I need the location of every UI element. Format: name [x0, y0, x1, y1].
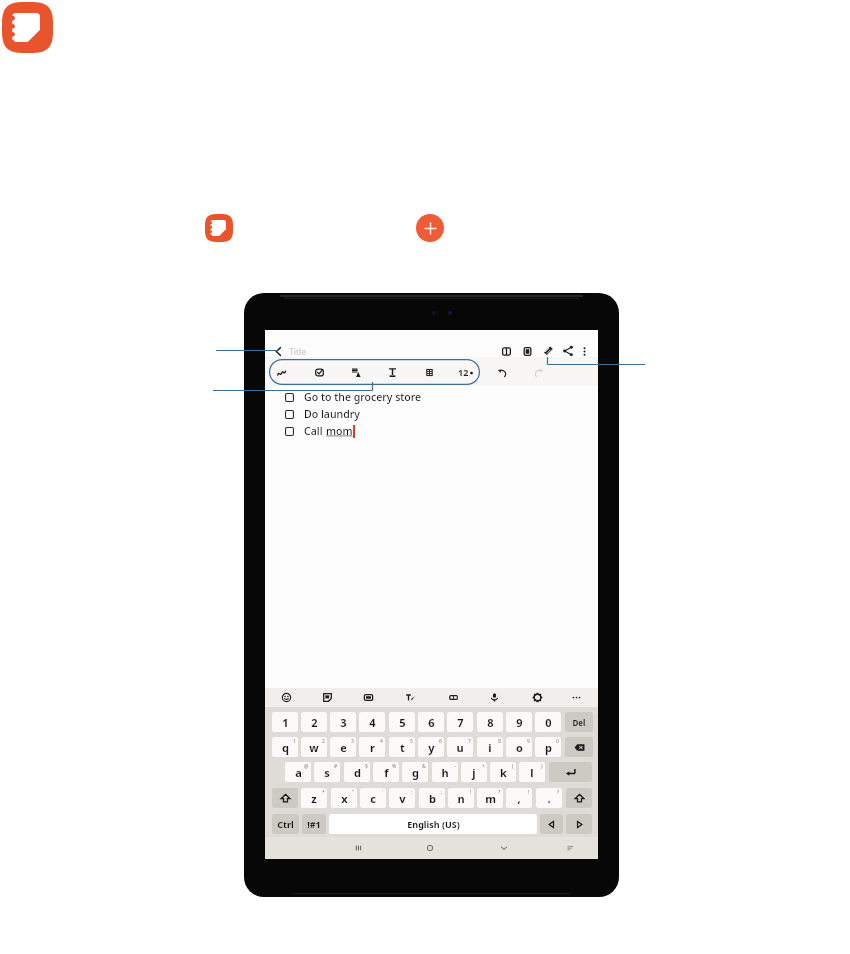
- button[interactable]: Checklist: [310, 363, 328, 381]
- button[interactable]: Emoji: [278, 689, 294, 705]
- button[interactable]: Shift: [566, 788, 592, 808]
- button[interactable]: Ctrl: [272, 814, 299, 834]
- staticText: 8: [487, 715, 494, 730]
- button[interactable]: Redo: [529, 363, 547, 381]
- button[interactable]: q: [272, 737, 298, 757]
- button[interactable]: Move cursor left: [540, 814, 563, 834]
- button[interactable]: GIF: [360, 689, 376, 705]
- staticText: j: [472, 765, 476, 780]
- staticText: p: [545, 740, 552, 755]
- button[interactable]: Home: [421, 839, 439, 857]
- button[interactable]: 4: [359, 712, 385, 732]
- button[interactable]: Clipboard: [445, 689, 461, 705]
- button[interactable]: More options: [576, 343, 592, 359]
- staticText: s: [324, 765, 330, 780]
- button[interactable]: More options: [568, 689, 584, 705]
- button[interactable]: j: [461, 762, 487, 782]
- staticText: &: [422, 763, 426, 770]
- button[interactable]: y: [418, 737, 444, 757]
- staticText: +: [482, 763, 485, 770]
- button[interactable]: e: [330, 737, 356, 757]
- button[interactable]: 2: [301, 712, 327, 732]
- button[interactable]: Go to the grocery store: [285, 389, 422, 405]
- staticText: English (US): [407, 818, 460, 830]
- button[interactable]: s: [314, 762, 340, 782]
- button[interactable]: Back: [270, 343, 287, 360]
- button[interactable]: Pen: [540, 343, 556, 359]
- button[interactable]: m: [477, 788, 503, 808]
- button[interactable]: 7: [447, 712, 473, 732]
- button[interactable]: Add note: [416, 214, 444, 242]
- button[interactable]: Handwriting: [272, 363, 290, 381]
- button[interactable]: ,: [506, 788, 532, 808]
- staticText: 6: [439, 738, 442, 745]
- button[interactable]: f: [373, 762, 399, 782]
- staticText: 6: [428, 715, 435, 730]
- staticText: y: [428, 740, 435, 755]
- button[interactable]: n: [448, 788, 474, 808]
- staticText: i: [488, 740, 492, 755]
- button[interactable]: 8: [477, 712, 503, 732]
- button[interactable]: Text extraction: [402, 689, 418, 705]
- button[interactable]: Enter: [549, 762, 592, 782]
- button[interactable]: 5: [389, 712, 415, 732]
- button[interactable]: Voice input: [486, 689, 502, 705]
- button[interactable]: Keyboard layout: [561, 839, 579, 857]
- button[interactable]: p: [535, 737, 561, 757]
- button[interactable]: Font size 12: [454, 363, 476, 380]
- button[interactable]: Recent apps: [349, 839, 367, 857]
- staticText: g: [412, 765, 419, 780]
- button[interactable]: u: [447, 737, 473, 757]
- button[interactable]: Undo: [493, 363, 511, 381]
- button[interactable]: Text format: [383, 363, 401, 381]
- button[interactable]: g: [402, 762, 428, 782]
- button[interactable]: Move cursor right: [566, 814, 592, 834]
- button[interactable]: .: [536, 788, 562, 808]
- button[interactable]: c: [360, 788, 386, 808]
- button[interactable]: v: [389, 788, 415, 808]
- staticText: 9: [527, 738, 530, 745]
- button[interactable]: w: [301, 737, 327, 757]
- button[interactable]: Samsung Notes: [205, 214, 233, 242]
- button[interactable]: Call: [285, 423, 355, 439]
- button[interactable]: z: [301, 788, 327, 808]
- button[interactable]: 6: [418, 712, 444, 732]
- button[interactable]: Settings: [529, 689, 545, 705]
- button[interactable]: i: [477, 737, 503, 757]
- button[interactable]: Stickers: [319, 689, 335, 705]
- staticText: ;: [441, 789, 443, 796]
- button[interactable]: Split view: [498, 343, 514, 359]
- button[interactable]: r: [359, 737, 385, 757]
- button[interactable]: d: [344, 762, 370, 782]
- button[interactable]: Note mode: [519, 343, 535, 359]
- button[interactable]: k: [490, 762, 516, 782]
- button[interactable]: b: [419, 788, 445, 808]
- button[interactable]: a: [285, 762, 311, 782]
- staticText: h: [441, 765, 449, 780]
- button[interactable]: English (US): [329, 814, 537, 834]
- button[interactable]: Shift: [272, 788, 298, 808]
- button[interactable]: Do laundry: [285, 406, 360, 422]
- staticText: e: [340, 740, 347, 755]
- button[interactable]: 3: [330, 712, 356, 732]
- button[interactable]: Share: [560, 343, 576, 359]
- staticText: a: [295, 765, 302, 780]
- button[interactable]: Del: [565, 712, 593, 732]
- staticText: Ctrl: [277, 818, 294, 830]
- button[interactable]: Table: [420, 363, 438, 381]
- staticText: Do laundry: [304, 407, 360, 421]
- staticText: :: [411, 789, 413, 796]
- button[interactable]: Paragraph style: [347, 363, 365, 381]
- button[interactable]: 0: [535, 712, 561, 732]
- button[interactable]: l: [519, 762, 545, 782]
- button[interactable]: Samsung Notes: [2, 2, 53, 53]
- button[interactable]: Backspace: [565, 737, 593, 757]
- button[interactable]: !#1: [302, 814, 326, 834]
- button[interactable]: o: [506, 737, 532, 757]
- button[interactable]: 1: [272, 712, 298, 732]
- button[interactable]: x: [331, 788, 357, 808]
- button[interactable]: t: [389, 737, 415, 757]
- button[interactable]: Hide keyboard: [495, 839, 513, 857]
- button[interactable]: h: [432, 762, 458, 782]
- button[interactable]: 9: [506, 712, 532, 732]
